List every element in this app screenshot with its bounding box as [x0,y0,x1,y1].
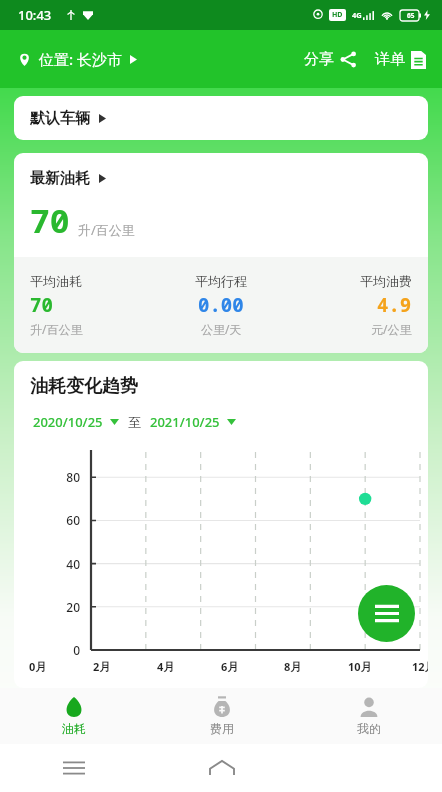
staticText: 4G [352,10,362,20]
staticText: 65 [407,11,415,20]
button[interactable]: 平均油费 [290,273,428,337]
staticText: 20 [18,599,80,615]
staticText: 升/百公里 [78,221,135,239]
button[interactable]: 默认车辆 [14,96,428,140]
staticText: 80 [18,469,80,485]
staticText: 油耗 [62,721,86,736]
staticText: 分享 [304,50,334,69]
staticText: 升/百公里 [30,321,83,337]
button[interactable]: 我的 [295,688,442,744]
button[interactable]: 费用 [148,688,295,744]
button[interactable]: Recent apps [0,744,148,792]
staticText: 费用 [210,721,234,736]
staticText: 油耗变化趋势 [30,375,138,398]
staticText: 12月 [412,659,428,674]
button[interactable]: 分享 [300,46,361,73]
button[interactable]: Home [148,744,295,792]
staticText: 元/公里 [371,321,412,337]
button[interactable]: 最新油耗 [14,153,428,257]
button[interactable]: Menu [358,585,415,642]
staticText: 70 [30,292,53,318]
staticText: 详单 [375,50,405,69]
staticText: 公里/天 [201,321,242,337]
staticText: 0 [18,642,80,658]
staticText: 8月 [284,659,302,674]
button[interactable]: 2021/10/25 [147,410,239,434]
button[interactable]: 位置: 长沙市 [14,45,141,73]
staticText: 0月 [29,659,47,674]
staticText: 10:43 [18,6,52,24]
staticText: 至 [128,414,141,430]
staticText: 平均油费 [360,273,412,289]
staticText: 位置: 长沙市 [39,49,122,69]
staticText: 0.00 [198,292,244,318]
staticText: 默认车辆 [30,109,90,128]
staticText: 2月 [93,659,111,674]
button[interactable]: 平均油耗 [14,273,152,337]
staticText: 4.9 [377,292,412,318]
button[interactable]: 2020/10/25 [30,410,122,434]
staticText: 70 [30,198,70,243]
button[interactable]: 详单 [371,46,430,73]
button[interactable]: 平均行程 [152,273,290,337]
staticText: 最新油耗 [30,169,90,188]
staticText: 我的 [357,721,381,736]
staticText: 平均油耗 [30,273,82,289]
staticText: 40 [18,556,80,572]
staticText: 2021/10/25 [150,413,220,431]
staticText: 平均行程 [195,273,247,289]
staticText: 60 [18,512,80,528]
staticText: 10月 [348,659,372,674]
staticText: 2020/10/25 [33,413,103,431]
staticText: 4月 [157,659,175,674]
staticText: HD [332,10,343,20]
button[interactable]: 油耗 [0,688,148,744]
staticText: 6月 [221,659,239,674]
